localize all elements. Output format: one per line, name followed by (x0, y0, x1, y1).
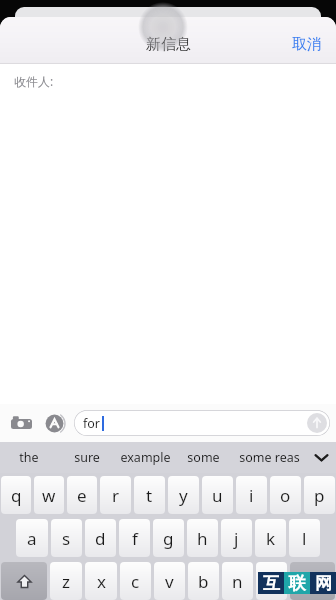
staticText: v (165, 570, 174, 593)
staticText: p (314, 484, 325, 507)
staticText: g (163, 527, 174, 550)
staticText: t (146, 484, 153, 507)
staticText: 收件人: (14, 73, 54, 89)
staticText: k (266, 527, 276, 550)
staticText: s (62, 527, 71, 550)
button[interactable]: Send (307, 413, 327, 433)
staticText: f (132, 527, 138, 550)
button[interactable]: p (304, 476, 335, 514)
staticText: example (120, 449, 171, 466)
button[interactable]: h (187, 519, 218, 557)
button[interactable]: 收件人: (0, 64, 336, 98)
button[interactable]: d (85, 519, 116, 557)
staticText: z (62, 570, 70, 593)
button[interactable]: for (74, 410, 330, 436)
staticText: 互 (263, 573, 280, 594)
button[interactable]: some (174, 442, 232, 473)
button[interactable]: b (188, 562, 219, 600)
staticText: the (19, 449, 39, 466)
button[interactable]: g (153, 519, 184, 557)
staticText: d (95, 527, 106, 550)
button[interactable]: n (222, 562, 253, 600)
staticText: 联 (289, 573, 306, 594)
button[interactable]: q (1, 476, 31, 514)
button[interactable]: a (16, 519, 48, 557)
button[interactable]: w (34, 476, 64, 514)
staticText: a (27, 527, 37, 550)
staticText: q (11, 484, 22, 507)
staticText: r (112, 484, 120, 507)
button[interactable]: u (202, 476, 233, 514)
staticText: u (212, 484, 223, 507)
staticText: i (249, 484, 254, 507)
staticText: some reas (239, 449, 300, 466)
staticText: some (187, 449, 220, 466)
button[interactable]: l (289, 519, 320, 557)
button[interactable]: r (100, 476, 131, 514)
button[interactable]: some reas (232, 442, 307, 473)
staticText: for (83, 415, 101, 432)
staticText: o (280, 484, 291, 507)
button[interactable]: f (119, 519, 150, 557)
staticText: c (131, 570, 140, 593)
button[interactable]: e (67, 476, 97, 514)
button[interactable]: j (221, 519, 252, 557)
staticText: x (97, 570, 106, 593)
staticText: e (77, 484, 87, 507)
staticText: 取消 (292, 35, 322, 54)
staticText: 新信息 (146, 35, 191, 54)
staticText: 网 (315, 573, 332, 594)
button[interactable]: Backspace (290, 562, 335, 600)
button[interactable]: Camera (6, 408, 36, 438)
button[interactable]: m (256, 562, 287, 600)
button[interactable]: t (134, 476, 165, 514)
staticText: j (234, 527, 239, 550)
staticText: b (198, 570, 209, 593)
button[interactable]: y (168, 476, 199, 514)
button[interactable]: o (270, 476, 301, 514)
staticText: n (232, 570, 243, 593)
button[interactable]: k (255, 519, 286, 557)
staticText: h (197, 527, 208, 550)
button[interactable]: v (154, 562, 185, 600)
button[interactable]: example (116, 442, 174, 473)
staticText: sure (74, 449, 100, 466)
button[interactable]: x (85, 562, 117, 600)
button[interactable]: c (120, 562, 151, 600)
button[interactable]: Shift (1, 562, 47, 600)
staticText: y (179, 484, 188, 507)
button[interactable]: z (50, 562, 82, 600)
button[interactable]: s (51, 519, 82, 557)
button[interactable]: sure (58, 442, 116, 473)
staticText: w (42, 484, 56, 507)
button[interactable]: i (236, 476, 267, 514)
button[interactable]: 取消 (278, 28, 336, 61)
staticText: m (264, 570, 280, 593)
button[interactable]: the (0, 442, 58, 473)
staticText: l (302, 527, 307, 550)
button[interactable]: App Store (39, 408, 69, 438)
button[interactable]: Hide predictions (307, 442, 336, 473)
